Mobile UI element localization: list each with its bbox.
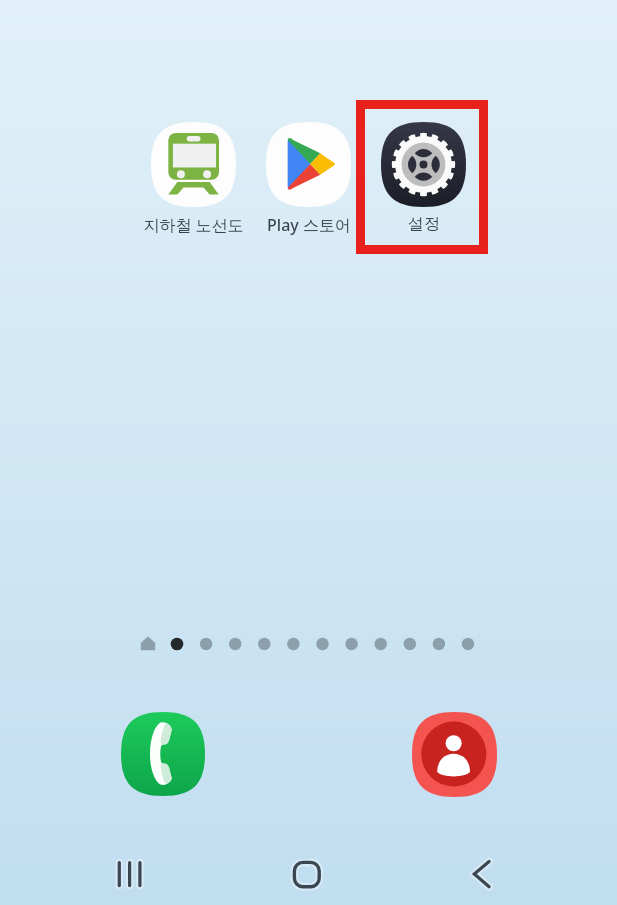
button[interactable]: Home [273, 842, 338, 905]
staticText: Play 스토어 [267, 214, 351, 236]
staticText: 설정 [408, 214, 440, 234]
button[interactable]: Contacts [412, 712, 497, 797]
button[interactable]: Recents [97, 842, 162, 905]
staticText: 지하철 노선도 [143, 214, 244, 236]
button[interactable]: 설정 [366, 122, 481, 234]
button[interactable]: Play 스토어 [251, 122, 366, 236]
button[interactable]: 지하철 노선도 [136, 122, 251, 236]
button[interactable]: Back [449, 842, 514, 905]
button[interactable]: Phone [121, 712, 205, 796]
